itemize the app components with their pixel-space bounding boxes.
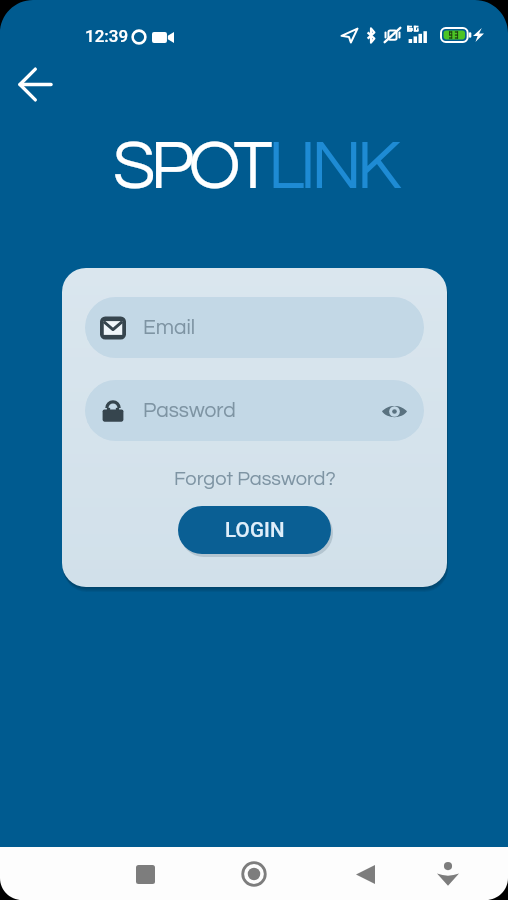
staticText: Forgot Password? [174, 469, 336, 490]
button[interactable]: Recents [121, 850, 169, 898]
button[interactable]: Email [85, 297, 424, 358]
button[interactable]: Forgot Password? [168, 465, 342, 494]
button[interactable]: LOGIN [178, 506, 331, 554]
button[interactable]: Back [341, 850, 389, 898]
button[interactable]: Password [85, 380, 424, 441]
button[interactable]: Back [18, 67, 53, 102]
button[interactable]: Show password [376, 393, 412, 429]
button[interactable]: Home [230, 850, 278, 898]
staticText: LINK [268, 131, 396, 202]
staticText: SPOT [113, 131, 268, 202]
staticText: LOGIN [225, 518, 285, 542]
button[interactable]: Hide keyboard [424, 850, 472, 898]
staticText: Password [143, 400, 236, 422]
staticText: 12:39 [85, 26, 129, 46]
staticText: Email [143, 317, 196, 339]
